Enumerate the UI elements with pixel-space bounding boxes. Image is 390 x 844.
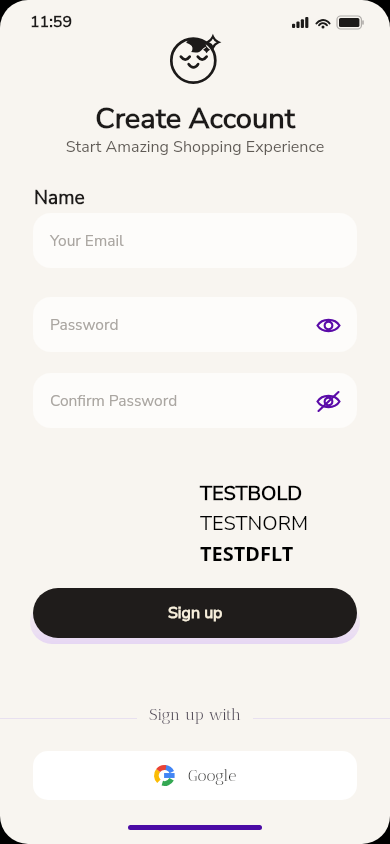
staticText: TESTBOLD: [200, 480, 303, 507]
staticText: Start Amazing Shopping Experience: [0, 136, 390, 158]
staticText: Password: [50, 314, 119, 335]
staticText: Sign up: [168, 602, 223, 624]
button[interactable]: Sign up: [33, 588, 357, 638]
button[interactable]: Hide password: [310, 383, 346, 419]
staticText: Confirm Password: [50, 390, 178, 411]
button[interactable]: Your Email: [33, 213, 357, 268]
staticText: TESTNORM: [200, 510, 309, 537]
staticText: Your Email: [50, 230, 124, 251]
button[interactable]: Show password: [310, 307, 346, 343]
button[interactable]: Google: [33, 751, 357, 800]
staticText: 11:59: [30, 11, 73, 33]
staticText: TESTDFLT: [200, 540, 294, 567]
staticText: Google: [188, 766, 237, 785]
button[interactable]: Password: [33, 297, 357, 352]
staticText: Sign up with: [149, 705, 241, 724]
staticText: Name: [34, 185, 85, 211]
button[interactable]: Confirm Password: [33, 373, 357, 428]
staticText: Create Account: [0, 99, 390, 139]
